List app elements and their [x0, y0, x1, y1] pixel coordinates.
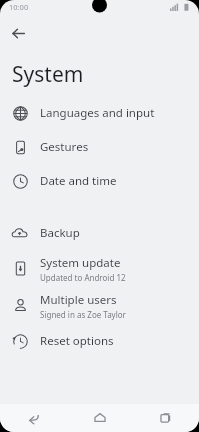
button[interactable]: Reset options — [0, 324, 199, 358]
staticText: Gestures — [40, 139, 89, 155]
button[interactable]: Languages and input — [0, 96, 199, 130]
button[interactable]: Recent apps — [133, 404, 199, 432]
button[interactable]: Back — [5, 20, 31, 46]
button[interactable]: Home — [67, 404, 133, 432]
staticText: Signed in as Zoe Taylor — [40, 309, 126, 320]
staticText: Languages and input — [40, 105, 155, 121]
staticText: Date and time — [40, 173, 117, 189]
staticText: System update — [40, 255, 121, 271]
button[interactable]: Back — [0, 404, 67, 432]
button[interactable]: System update — [0, 250, 199, 287]
staticText: Backup — [40, 225, 80, 241]
staticText: Multiple users — [40, 292, 117, 308]
button[interactable]: Date and time — [0, 164, 199, 198]
staticText: Reset options — [40, 333, 114, 349]
staticText: System — [12, 60, 84, 89]
staticText: Updated to Android 12 — [40, 272, 126, 283]
button[interactable]: Multiple users — [0, 287, 199, 324]
button[interactable]: Backup — [0, 216, 199, 250]
staticText: 10:00 — [9, 2, 29, 12]
button[interactable]: Gestures — [0, 130, 199, 164]
